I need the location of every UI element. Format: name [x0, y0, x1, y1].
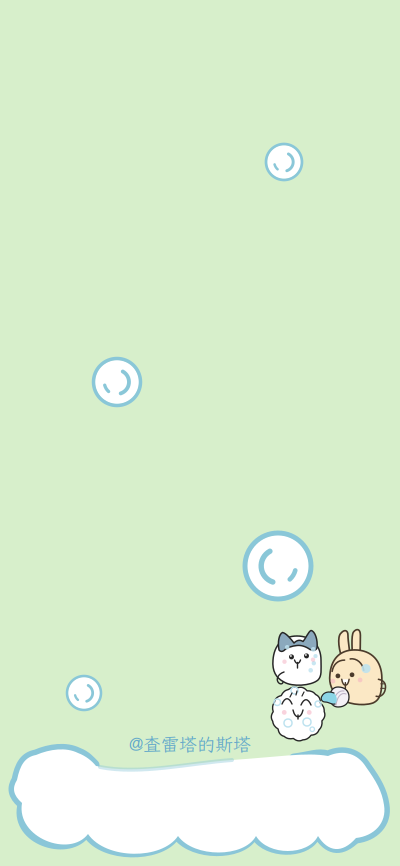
- button[interactable]: @查雷塔的斯塔: [129, 732, 251, 756]
- staticText: @查雷塔的斯塔: [129, 732, 251, 756]
